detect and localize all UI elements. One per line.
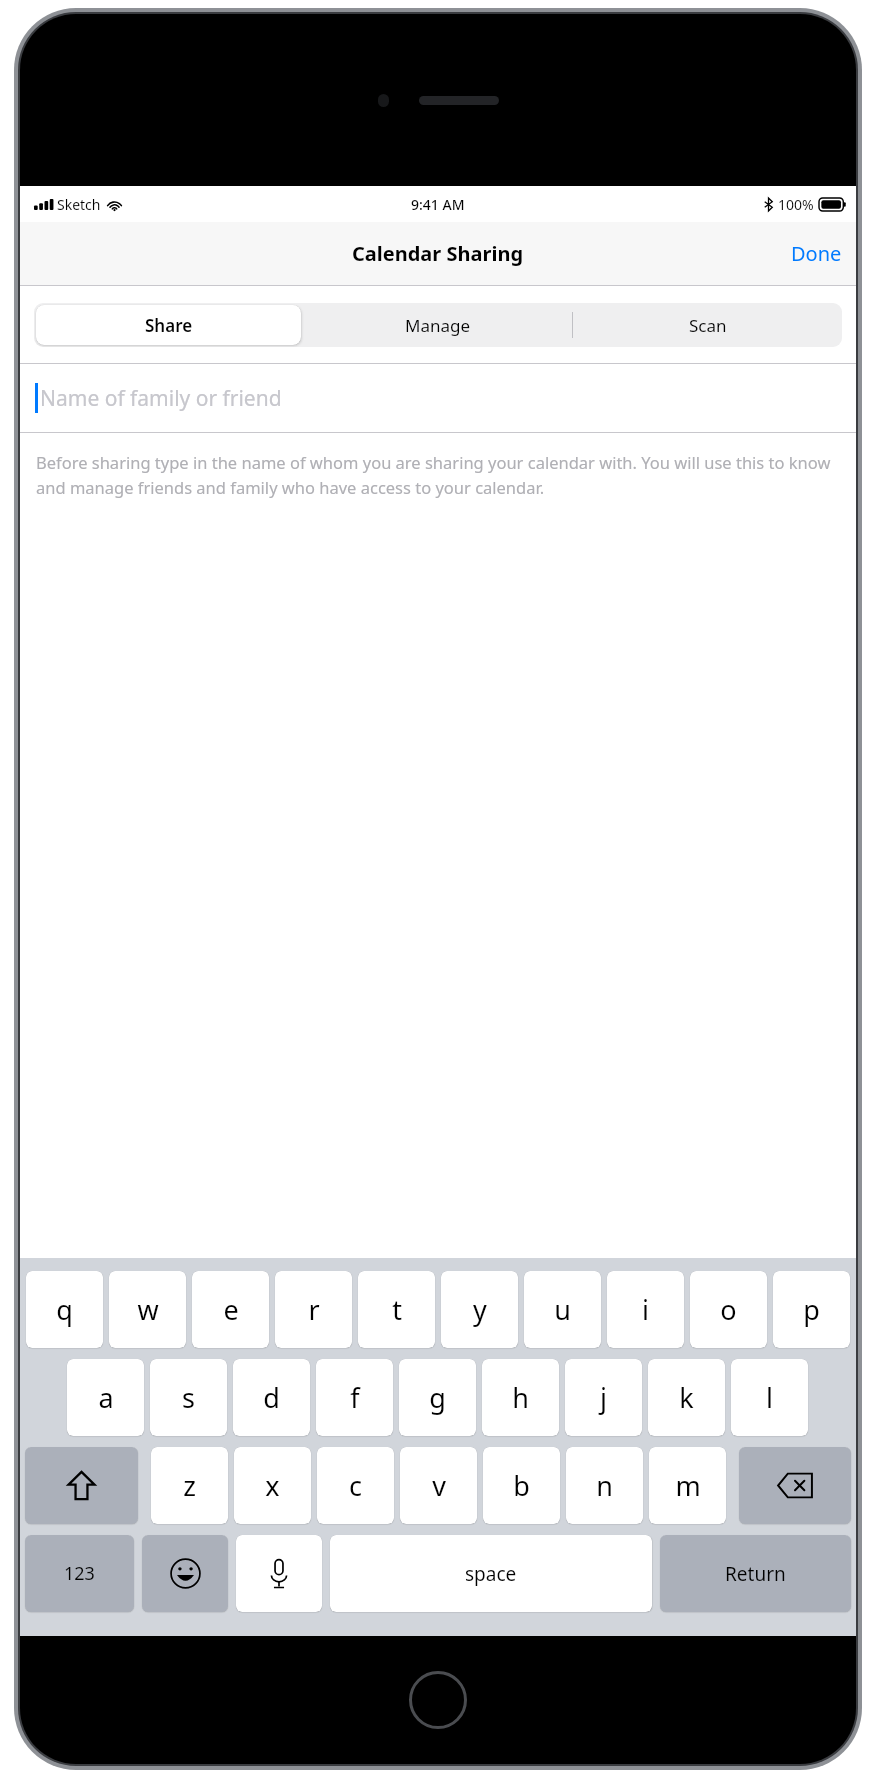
button[interactable]: r: [275, 1271, 352, 1348]
staticText: r: [308, 1291, 320, 1328]
button[interactable]: t: [358, 1271, 435, 1348]
button[interactable]: p: [773, 1271, 850, 1348]
button[interactable]: q: [26, 1271, 103, 1348]
button[interactable]: j: [565, 1359, 642, 1436]
staticText: k: [679, 1379, 694, 1416]
staticText: x: [265, 1467, 280, 1504]
button[interactable]: Dictation: [236, 1535, 322, 1612]
staticText: g: [429, 1379, 446, 1416]
button[interactable]: Manage: [303, 303, 572, 347]
button[interactable]: Done: [777, 230, 856, 277]
staticText: l: [766, 1379, 773, 1416]
staticText: u: [554, 1291, 571, 1328]
staticText: q: [56, 1291, 73, 1328]
staticText: o: [720, 1291, 737, 1328]
staticText: y: [473, 1291, 487, 1328]
button[interactable]: n: [566, 1447, 643, 1524]
button[interactable]: v: [400, 1447, 477, 1524]
staticText: Return: [725, 1561, 786, 1587]
button[interactable]: x: [234, 1447, 311, 1524]
staticText: d: [263, 1379, 280, 1416]
button[interactable]: e: [192, 1271, 269, 1348]
staticText: z: [183, 1467, 196, 1504]
staticText: Manage: [405, 314, 471, 337]
staticText: e: [223, 1291, 239, 1328]
button[interactable]: b: [483, 1447, 560, 1524]
button[interactable]: a: [67, 1359, 144, 1436]
staticText: 123: [64, 1561, 95, 1586]
button[interactable]: Share: [36, 305, 301, 345]
button[interactable]: h: [482, 1359, 559, 1436]
button[interactable]: z: [151, 1447, 228, 1524]
staticText: c: [349, 1467, 362, 1504]
staticText: a: [98, 1379, 114, 1416]
staticText: 9:41 AM: [411, 195, 465, 214]
staticText: n: [596, 1467, 613, 1504]
staticText: p: [803, 1291, 820, 1328]
staticText: Before sharing type in the name of whom …: [36, 451, 840, 499]
button[interactable]: o: [690, 1271, 767, 1348]
staticText: 100%: [778, 195, 814, 214]
button[interactable]: d: [233, 1359, 310, 1436]
staticText: h: [512, 1379, 529, 1416]
staticText: f: [350, 1379, 360, 1416]
button[interactable]: Scan: [573, 303, 842, 347]
staticText: b: [513, 1467, 530, 1504]
button[interactable]: f: [316, 1359, 393, 1436]
button[interactable]: Emoji: [142, 1535, 228, 1612]
button[interactable]: l: [731, 1359, 808, 1436]
button[interactable]: k: [648, 1359, 725, 1436]
button[interactable]: i: [607, 1271, 684, 1348]
staticText: v: [432, 1467, 446, 1504]
button[interactable]: y: [441, 1271, 518, 1348]
staticText: i: [642, 1291, 649, 1328]
button[interactable]: c: [317, 1447, 394, 1524]
button[interactable]: s: [150, 1359, 227, 1436]
staticText: Done: [791, 240, 842, 267]
staticText: m: [675, 1467, 701, 1504]
staticText: j: [600, 1379, 607, 1416]
button[interactable]: Shift: [25, 1447, 138, 1524]
button[interactable]: w: [109, 1271, 186, 1348]
button[interactable]: Delete: [739, 1447, 851, 1524]
button[interactable]: space: [330, 1535, 652, 1612]
button[interactable]: u: [524, 1271, 601, 1348]
button[interactable]: m: [649, 1447, 726, 1524]
staticText: s: [182, 1379, 195, 1416]
staticText: Sketch: [57, 195, 101, 214]
staticText: Scan: [689, 314, 727, 337]
staticText: Name of family or friend: [40, 384, 282, 413]
button[interactable]: g: [399, 1359, 476, 1436]
staticText: Share: [145, 314, 193, 337]
staticText: Calendar Sharing: [352, 240, 524, 267]
staticText: space: [465, 1561, 517, 1587]
button[interactable]: Name of family or friend: [20, 364, 856, 432]
button[interactable]: Return: [660, 1535, 851, 1612]
staticText: w: [137, 1291, 159, 1328]
staticText: t: [392, 1291, 402, 1328]
button[interactable]: 123: [25, 1535, 134, 1612]
